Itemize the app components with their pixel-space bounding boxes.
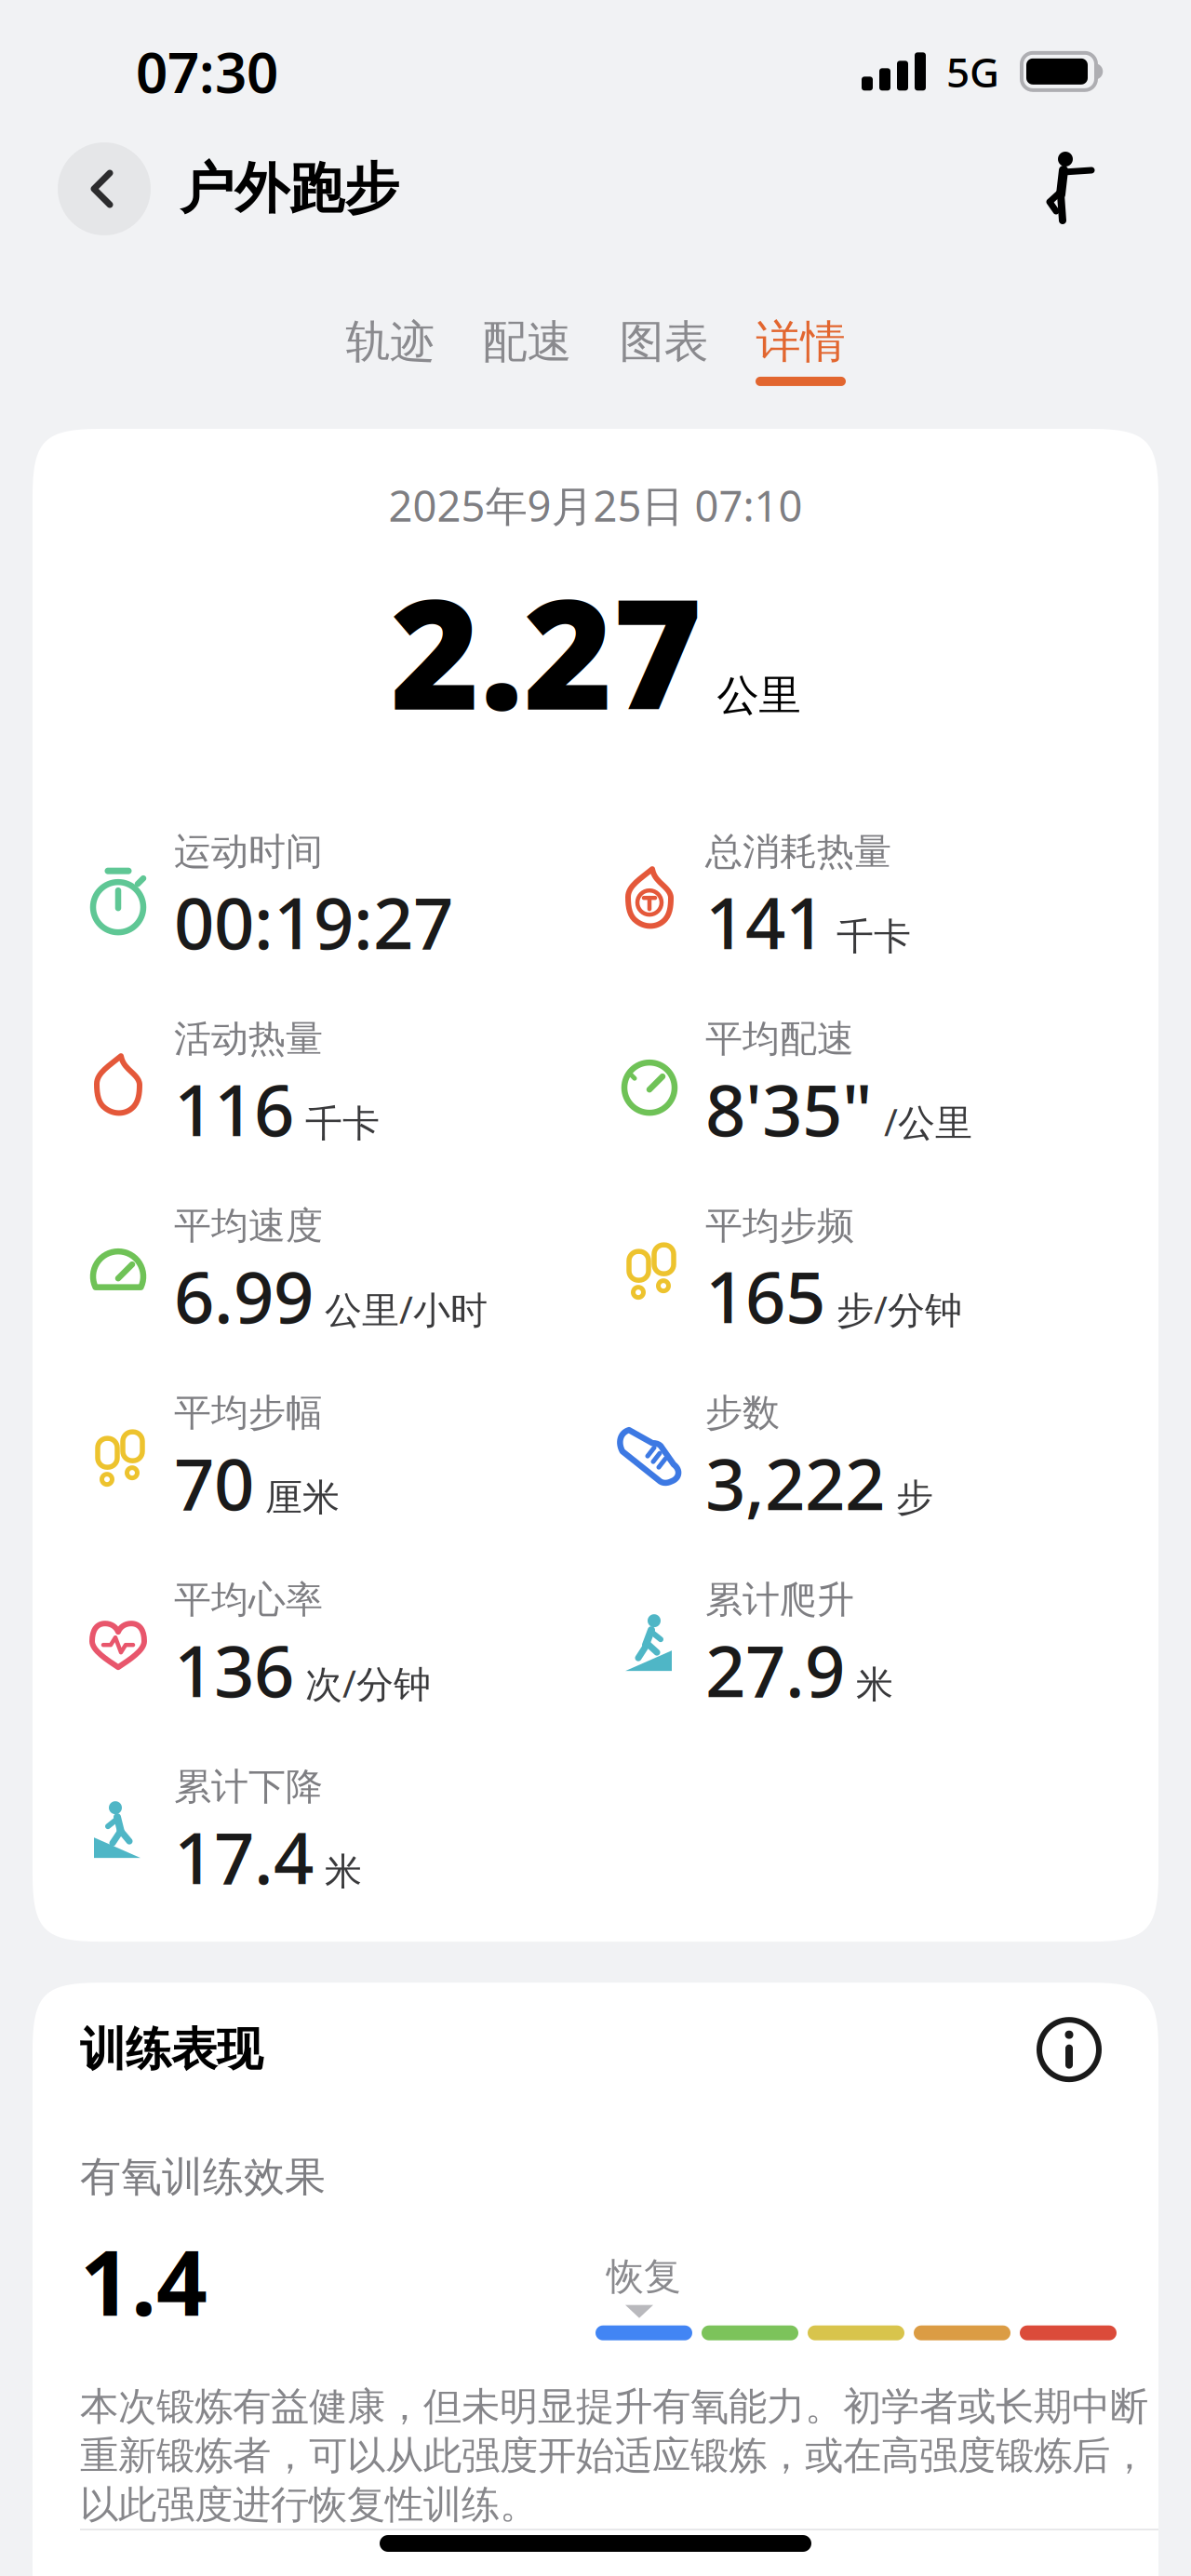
staticText: 图表	[619, 314, 709, 369]
button[interactable]: 图表	[619, 314, 709, 386]
staticText: 07:30	[136, 34, 278, 109]
staticText: 以此强度进行恢复性训练。	[80, 2481, 538, 2529]
staticText: 恢复	[607, 2254, 681, 2299]
staticText: 步/分钟	[836, 1284, 962, 1334]
staticText: 千卡	[305, 1101, 380, 1147]
staticText: 活动热量	[174, 1016, 323, 1062]
staticText: 5G	[946, 44, 999, 99]
staticText: 70	[174, 1436, 254, 1530]
staticText: 2025年9月25日 07:10	[388, 477, 803, 533]
staticText: 配速	[482, 314, 572, 369]
staticText: 次/分钟	[305, 1658, 431, 1708]
staticText: 运动时间	[174, 829, 323, 875]
staticText: 平均配速	[705, 1016, 854, 1062]
staticText: 户外跑步	[180, 155, 399, 222]
staticText: 公里	[717, 670, 801, 722]
staticText: 米	[325, 1849, 362, 1894]
staticText: 3,222	[705, 1436, 885, 1530]
staticText: 轨迹	[346, 314, 435, 369]
staticText: 17.4	[174, 1810, 314, 1904]
staticText: 有氧训练效果	[80, 2152, 326, 2202]
staticText: 公里/小时	[325, 1284, 488, 1334]
button[interactable]: Workout animation	[1049, 152, 1106, 226]
staticText: 米	[856, 1662, 893, 1707]
staticText: 本次锻炼有益健康，但未明显提升有氧能力。初学者或长期中断	[80, 2383, 1148, 2430]
staticText: 总消耗热量	[705, 829, 891, 875]
staticText: 2.27	[390, 549, 702, 752]
button[interactable]: Back	[58, 142, 151, 235]
staticText: 116	[174, 1062, 294, 1156]
staticText: 136	[174, 1623, 294, 1717]
staticText: 27.9	[705, 1623, 845, 1717]
staticText: 详情	[756, 314, 845, 369]
staticText: 训练表现	[80, 2021, 262, 2078]
staticText: 步数	[705, 1390, 780, 1436]
staticText: 重新锻炼者，可以从此强度开始适应锻炼，或在高强度锻炼后，	[80, 2432, 1148, 2480]
staticText: 累计下降	[174, 1764, 323, 1810]
button[interactable]: Info	[1039, 2020, 1099, 2079]
staticText: 步	[896, 1475, 933, 1520]
staticText: 8'35"	[705, 1062, 873, 1156]
staticText: 厘米	[265, 1475, 340, 1520]
button[interactable]: 配速	[482, 314, 572, 386]
staticText: 平均心率	[174, 1577, 323, 1623]
staticText: 00:19:27	[174, 875, 453, 969]
staticText: 累计爬升	[705, 1577, 854, 1623]
staticText: 千卡	[836, 914, 911, 960]
staticText: 141	[705, 875, 825, 969]
staticText: 1.4	[80, 2222, 207, 2340]
button[interactable]: 详情	[756, 314, 846, 386]
staticText: 6.99	[174, 1249, 314, 1343]
staticText: 平均步幅	[174, 1390, 323, 1436]
staticText: 平均步频	[705, 1203, 854, 1249]
staticText: /公里	[884, 1097, 972, 1146]
staticText: 165	[705, 1249, 825, 1343]
button[interactable]: 轨迹	[345, 314, 435, 386]
staticText: 平均速度	[174, 1203, 323, 1249]
